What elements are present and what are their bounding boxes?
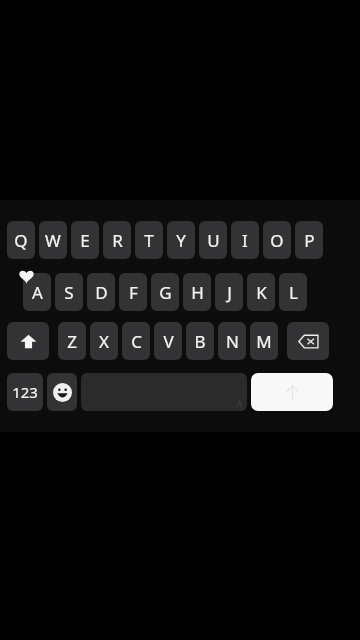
button[interactable]: B — [186, 322, 214, 360]
staticText: V — [163, 330, 174, 353]
staticText: F — [129, 281, 138, 304]
button[interactable]: P — [295, 221, 323, 259]
staticText: Z — [67, 330, 77, 353]
staticText: M — [256, 330, 272, 353]
button[interactable]: Y — [167, 221, 195, 259]
staticText: W — [45, 229, 61, 252]
button[interactable]: R — [103, 221, 131, 259]
staticText: B — [194, 330, 206, 353]
staticText: S — [64, 281, 74, 304]
button[interactable]: 123 — [7, 373, 43, 411]
button[interactable]: I — [231, 221, 259, 259]
staticText: Y — [176, 229, 186, 252]
staticText: P — [304, 229, 315, 252]
button[interactable]: D — [87, 273, 115, 311]
button[interactable]: T — [135, 221, 163, 259]
button[interactable]: N — [218, 322, 246, 360]
staticText: Q — [14, 229, 28, 252]
staticText: X — [99, 330, 109, 353]
staticText: U — [207, 229, 220, 252]
button[interactable]: U — [199, 221, 227, 259]
button[interactable]: W — [39, 221, 67, 259]
button[interactable]: H — [183, 273, 211, 311]
button[interactable]: F — [119, 273, 147, 311]
button[interactable]: S — [55, 273, 83, 311]
button[interactable]: Q — [7, 221, 35, 259]
staticText: 123 — [12, 382, 38, 402]
staticText: E — [80, 229, 90, 252]
staticText: I — [242, 229, 248, 252]
button[interactable]: Emoji — [47, 373, 77, 411]
staticText: A — [32, 281, 43, 304]
button[interactable]: E — [71, 221, 99, 259]
button[interactable]: L — [279, 273, 307, 311]
button[interactable]: M — [250, 322, 278, 360]
button[interactable]: G — [151, 273, 179, 311]
staticText: N — [226, 330, 239, 353]
staticText: L — [289, 281, 298, 304]
staticText: G — [159, 281, 172, 304]
staticText: O — [270, 229, 284, 252]
staticText: D — [95, 281, 108, 304]
button[interactable]: Shift — [7, 322, 49, 360]
button[interactable]: O — [263, 221, 291, 259]
staticText: H — [191, 281, 204, 304]
staticText: A — [237, 398, 243, 409]
button[interactable]: A — [23, 273, 51, 311]
staticText: R — [112, 229, 123, 252]
button[interactable]: V — [154, 322, 182, 360]
button[interactable]: X — [90, 322, 118, 360]
button[interactable]: C — [122, 322, 150, 360]
button[interactable]: K — [247, 273, 275, 311]
button[interactable]: Backspace — [287, 322, 329, 360]
staticText: T — [144, 229, 154, 252]
staticText: J — [227, 281, 232, 304]
button[interactable]: Z — [58, 322, 86, 360]
staticText: C — [131, 330, 142, 353]
button[interactable]: J — [215, 273, 243, 311]
button[interactable]: Enter — [251, 373, 333, 411]
staticText: K — [256, 281, 267, 304]
